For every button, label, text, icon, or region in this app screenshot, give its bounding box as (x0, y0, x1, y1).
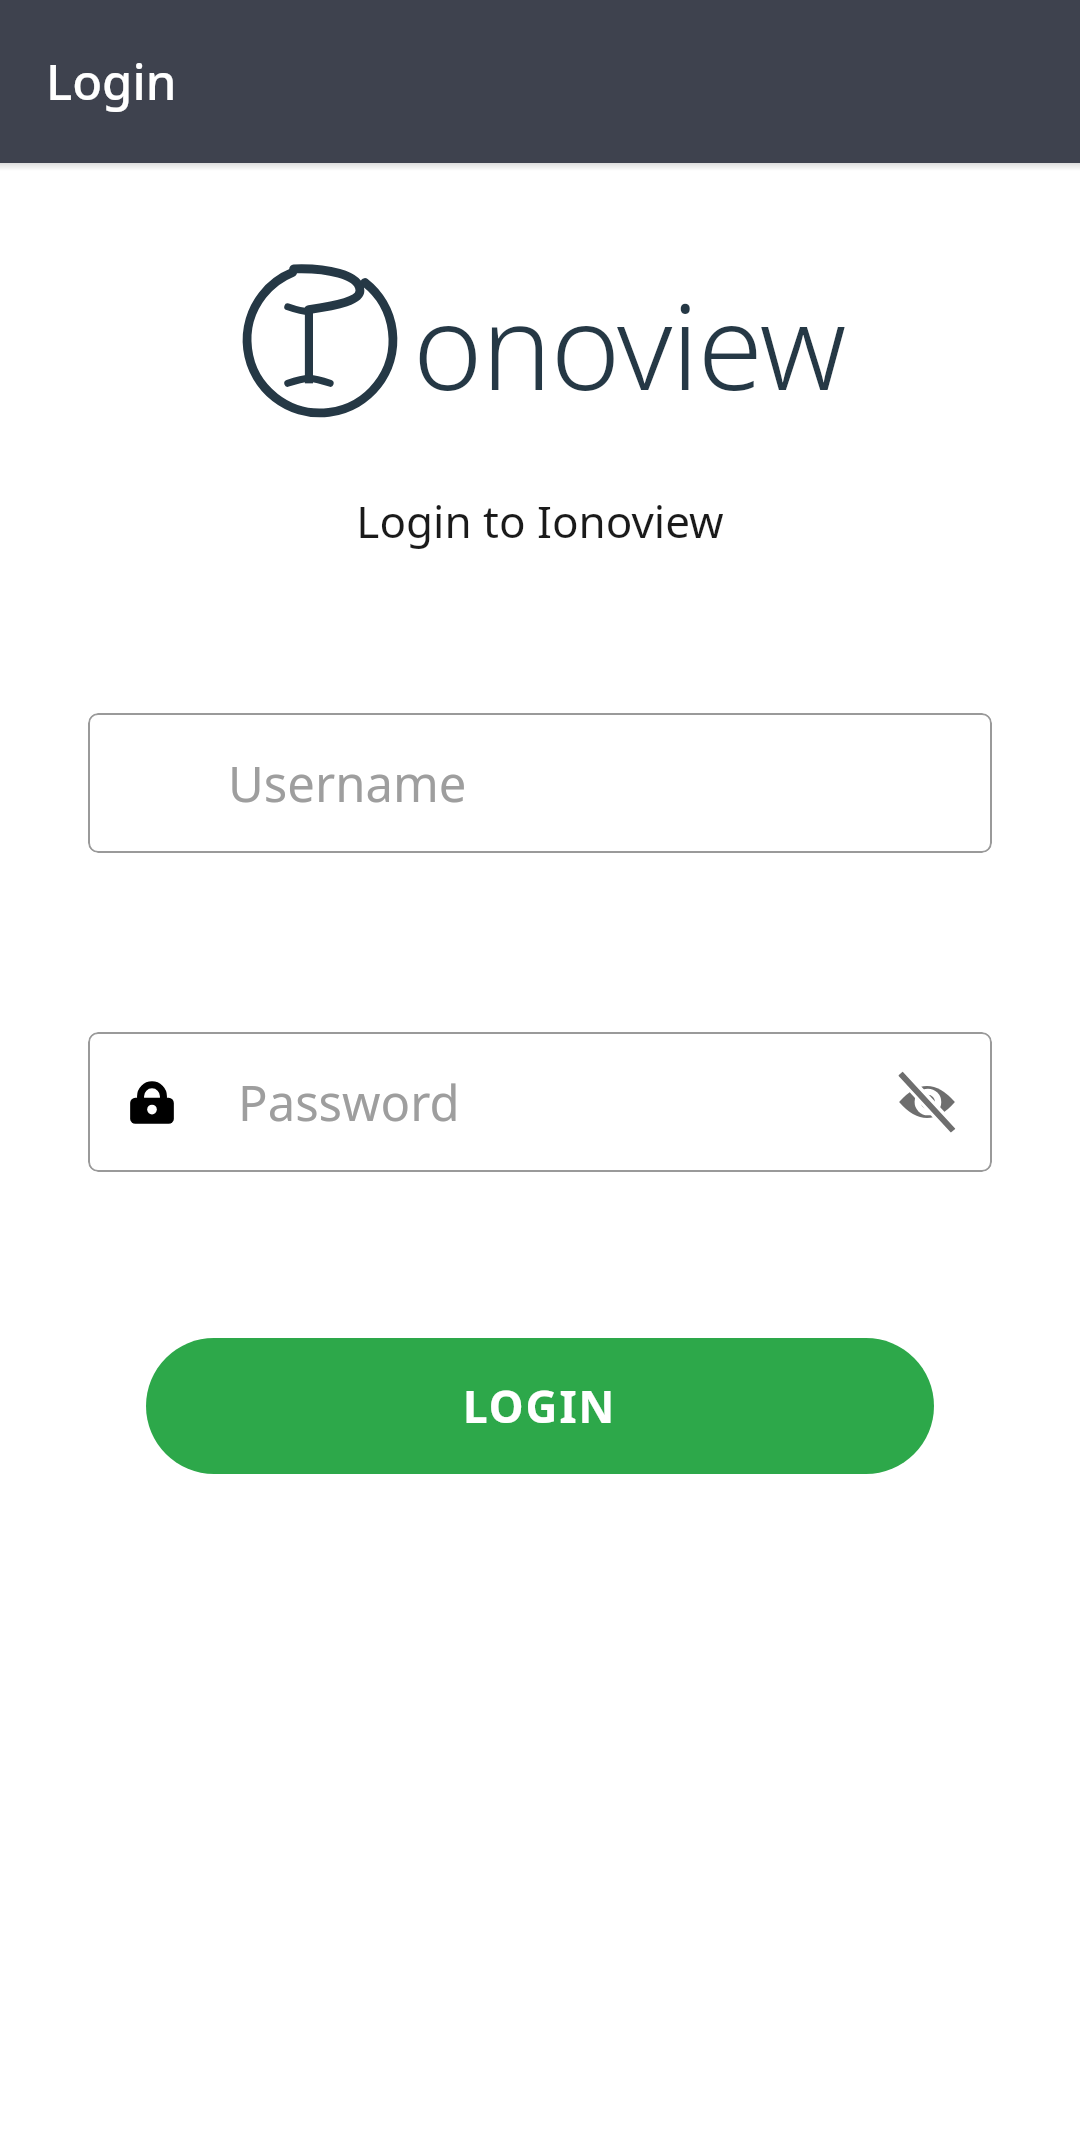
staticText: Username (228, 750, 467, 817)
staticText: Password (238, 1069, 460, 1136)
staticText: Login (46, 48, 177, 115)
button[interactable]: LOGIN (146, 1338, 934, 1474)
button[interactable]: Username (88, 713, 992, 853)
staticText: LOGIN (463, 1376, 617, 1436)
staticText: Login to Ionoview (0, 491, 1080, 551)
button[interactable]: Password (88, 1032, 992, 1172)
staticText: onoview (413, 264, 846, 425)
button[interactable]: Show password (888, 1063, 966, 1141)
